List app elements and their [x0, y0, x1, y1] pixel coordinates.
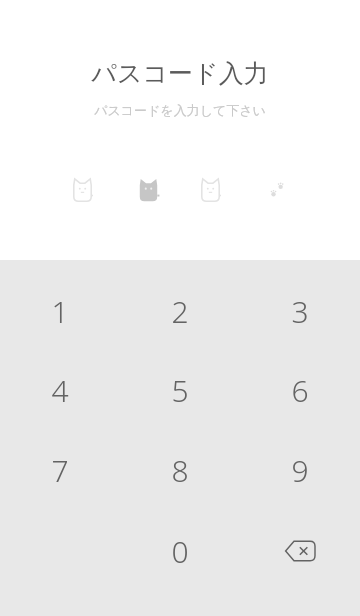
- staticText: 8: [171, 450, 189, 491]
- button[interactable]: 6: [240, 350, 360, 430]
- button[interactable]: 9: [240, 430, 360, 510]
- staticText: 1: [51, 291, 69, 332]
- staticText: 9: [291, 450, 309, 491]
- button[interactable]: 3: [240, 272, 360, 350]
- staticText: 4: [51, 370, 69, 411]
- button[interactable]: 5: [120, 350, 240, 430]
- staticText: パスコードを入力して下さい: [94, 102, 266, 118]
- staticText: 3: [291, 291, 309, 332]
- staticText: 6: [291, 370, 309, 411]
- staticText: 0: [171, 531, 189, 572]
- staticText: 5: [171, 370, 189, 411]
- button[interactable]: 7: [0, 430, 120, 510]
- button[interactable]: 4: [0, 350, 120, 430]
- button[interactable]: 2: [120, 272, 240, 350]
- button[interactable]: Delete: [240, 510, 360, 592]
- button[interactable]: 0: [120, 510, 240, 592]
- button[interactable]: 8: [120, 430, 240, 510]
- staticText: 7: [51, 450, 69, 491]
- staticText: 2: [171, 291, 189, 332]
- staticText: パスコード入力: [91, 58, 269, 89]
- button[interactable]: 1: [0, 272, 120, 350]
